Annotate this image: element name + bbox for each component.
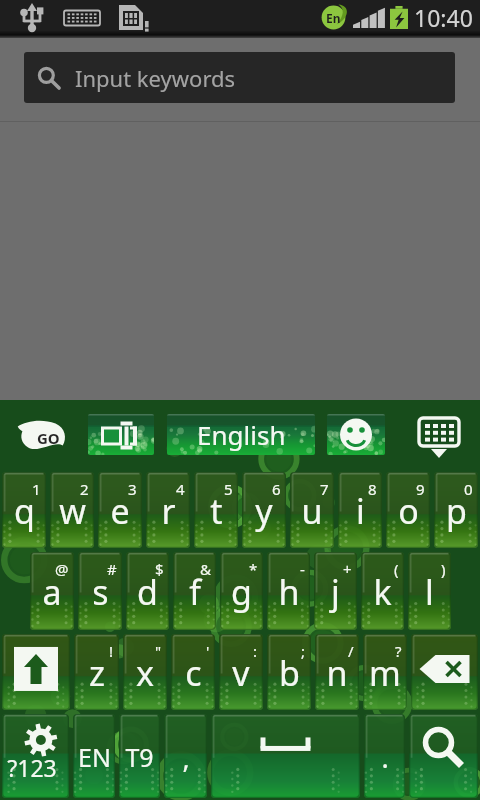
button[interactable]: Search [409, 714, 478, 798]
staticText: # [107, 559, 117, 579]
button[interactable]: j [314, 552, 357, 630]
staticText: 3 [128, 479, 137, 499]
staticText: b [279, 650, 300, 696]
staticText: 7 [320, 479, 329, 499]
staticText: - [300, 559, 305, 579]
staticText: / [348, 641, 354, 661]
staticText: @ [55, 559, 69, 579]
button[interactable]: z [74, 634, 119, 710]
staticText: 9 [416, 479, 425, 499]
button[interactable]: Input keywords [24, 52, 455, 103]
staticText: e [110, 488, 130, 534]
staticText: r [161, 488, 176, 534]
staticText: 10:40 [414, 2, 473, 33]
staticText: p [446, 488, 467, 534]
staticText: d [137, 569, 158, 615]
staticText: , [182, 739, 190, 776]
staticText: + [343, 559, 352, 579]
staticText: ) [441, 559, 446, 579]
button[interactable]: EN [73, 714, 115, 798]
staticText: Input keywords [75, 63, 236, 93]
button[interactable]: m [363, 634, 407, 710]
staticText: k [373, 569, 392, 615]
staticText: o [398, 488, 419, 534]
staticText: . [381, 739, 389, 776]
button[interactable]: k [361, 552, 404, 630]
button[interactable]: n [315, 634, 359, 710]
button[interactable]: . [364, 714, 405, 798]
staticText: i [356, 488, 365, 534]
staticText: ?123 [7, 752, 57, 783]
staticText: f [189, 569, 201, 615]
staticText: EN [78, 740, 111, 774]
staticText: s [92, 569, 109, 615]
staticText: 5 [224, 479, 233, 499]
staticText: x [136, 650, 154, 696]
staticText: c [185, 650, 202, 696]
button[interactable]: , [164, 714, 207, 798]
staticText: 1 [32, 479, 41, 499]
button[interactable]: T9 [119, 714, 160, 798]
staticText: w [59, 488, 86, 534]
button[interactable]: x [123, 634, 167, 710]
button[interactable]: e [98, 472, 142, 548]
button[interactable]: s [78, 552, 122, 630]
button[interactable]: a [30, 552, 74, 630]
button[interactable]: p [434, 472, 478, 548]
button[interactable]: v [219, 634, 263, 710]
button[interactable]: t [194, 472, 238, 548]
staticText: ( [394, 559, 399, 579]
button[interactable]: Delete [411, 634, 478, 710]
staticText: 4 [176, 479, 185, 499]
button[interactable]: Hide keyboard [404, 410, 474, 462]
button[interactable]: ?123 [2, 714, 69, 798]
staticText: 6 [272, 479, 281, 499]
staticText: q [14, 488, 35, 534]
staticText: 8 [368, 479, 377, 499]
button[interactable]: Layout [88, 414, 154, 455]
button[interactable]: r [146, 472, 190, 548]
button[interactable]: f [173, 552, 216, 630]
button[interactable]: Space [211, 714, 360, 798]
button[interactable]: y [242, 472, 286, 548]
staticText: j [331, 569, 340, 615]
staticText: GO [37, 428, 60, 448]
button[interactable]: i [338, 472, 382, 548]
button[interactable]: c [171, 634, 215, 710]
button[interactable]: h [267, 552, 310, 630]
staticText: $ [155, 559, 164, 579]
staticText: v [232, 650, 250, 696]
staticText: z [89, 650, 105, 696]
staticText: h [278, 569, 300, 615]
button[interactable]: b [267, 634, 311, 710]
staticText: y [255, 488, 273, 534]
button[interactable]: GO Keyboard menu [8, 412, 80, 460]
staticText: T9 [125, 740, 154, 774]
staticText: ; [301, 641, 306, 661]
staticText: a [42, 569, 62, 615]
button[interactable]: o [386, 472, 430, 548]
button[interactable]: d [126, 552, 169, 630]
staticText: * [249, 559, 258, 579]
button[interactable]: Shift [2, 634, 70, 710]
staticText: " [155, 641, 162, 661]
staticText: l [425, 569, 434, 615]
staticText: m [369, 650, 401, 696]
button[interactable]: English [167, 414, 315, 455]
button[interactable]: w [50, 472, 94, 548]
staticText: g [231, 569, 252, 615]
staticText: n [326, 650, 348, 696]
staticText: English [197, 417, 286, 452]
staticText: ' [206, 641, 210, 661]
button[interactable]: l [408, 552, 451, 630]
staticText: & [200, 559, 211, 579]
button[interactable]: g [220, 552, 263, 630]
button[interactable]: q [2, 472, 46, 548]
staticText: ? [395, 641, 402, 661]
staticText: En [326, 10, 341, 26]
button[interactable]: Emoji [327, 414, 385, 455]
staticText: t [210, 488, 223, 534]
staticText: u [301, 488, 323, 534]
button[interactable]: u [290, 472, 334, 548]
staticText: : [253, 641, 258, 661]
